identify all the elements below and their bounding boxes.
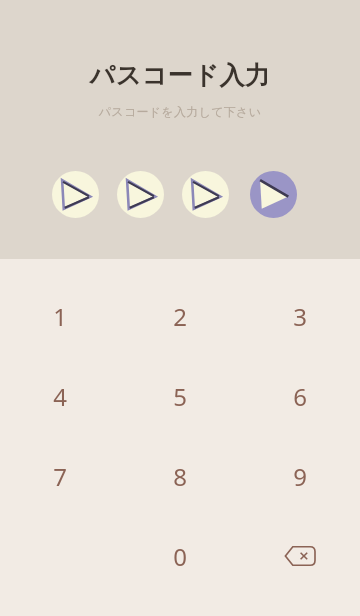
staticText: 9 (293, 460, 307, 493)
button[interactable]: 8 (120, 436, 240, 516)
button[interactable]: 2 (120, 276, 240, 356)
staticText: 6 (293, 380, 307, 413)
button[interactable]: 4 (0, 356, 120, 436)
staticText: 8 (173, 460, 187, 493)
staticText: 7 (53, 460, 67, 493)
button[interactable]: 1 (0, 276, 120, 356)
staticText: 0 (173, 540, 187, 573)
button[interactable]: 6 (240, 356, 360, 436)
button[interactable]: 5 (120, 356, 240, 436)
staticText: 5 (173, 380, 187, 413)
staticText: パスコード入力 (0, 60, 360, 91)
staticText: 4 (53, 380, 67, 413)
button[interactable]: 0 (120, 516, 240, 596)
button[interactable]: 3 (240, 276, 360, 356)
staticText: 3 (293, 300, 307, 333)
button[interactable]: 9 (240, 436, 360, 516)
button[interactable]: Backspace (240, 516, 360, 596)
staticText: 1 (53, 300, 67, 333)
staticText: パスコードを入力して下さい (0, 104, 360, 119)
button[interactable]: 7 (0, 436, 120, 516)
staticText: 2 (173, 300, 187, 333)
